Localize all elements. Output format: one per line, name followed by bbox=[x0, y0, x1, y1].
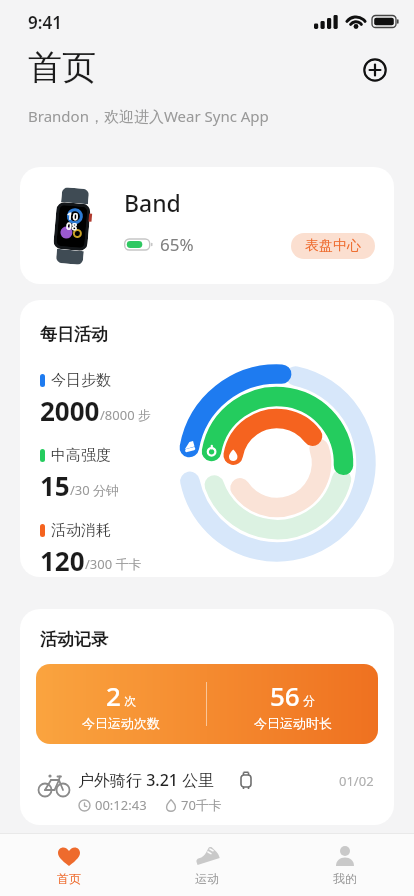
staticText: 今日步数 bbox=[51, 371, 111, 390]
staticText: 活动记录 bbox=[40, 629, 108, 650]
staticText: 户外骑行 3.21 公里 bbox=[78, 769, 215, 791]
staticText: Brandon，欢迎进入Wear Sync App bbox=[28, 106, 269, 126]
button[interactable]: 我的 bbox=[276, 834, 414, 896]
staticText: 首页 bbox=[28, 46, 96, 89]
staticText: 65% bbox=[160, 233, 194, 256]
staticText: 今日运动次数 bbox=[82, 715, 160, 731]
staticText: 运动 bbox=[195, 871, 219, 886]
staticText: /30 分钟 bbox=[70, 481, 120, 499]
staticText: 中高强度 bbox=[51, 446, 111, 465]
staticText: 120 bbox=[40, 543, 85, 577]
button[interactable] bbox=[360, 55, 390, 85]
staticText: 01/02 bbox=[339, 772, 374, 790]
staticText: 我的 bbox=[333, 871, 357, 886]
staticText: /300 千卡 bbox=[85, 555, 142, 573]
staticText: 2000 bbox=[40, 393, 100, 428]
staticText: 10 bbox=[66, 208, 79, 223]
staticText: 08 bbox=[65, 218, 79, 233]
button[interactable]: 2 bbox=[36, 664, 378, 744]
staticText: 56 bbox=[270, 678, 300, 713]
staticText: 15 bbox=[40, 468, 70, 503]
staticText: 9:41 bbox=[28, 11, 62, 34]
staticText: 00:12:43 bbox=[95, 796, 147, 814]
button[interactable]: 运动 bbox=[138, 834, 276, 896]
button[interactable]: 每日活动 bbox=[20, 300, 394, 577]
button[interactable]: 10 bbox=[20, 167, 394, 284]
button[interactable]: 表盘中心 bbox=[291, 233, 375, 259]
staticText: 次 bbox=[121, 692, 137, 708]
button[interactable]: 首页 bbox=[0, 834, 138, 896]
staticText: 70千卡 bbox=[181, 796, 222, 814]
staticText: 2 bbox=[106, 678, 121, 713]
staticText: 首页 bbox=[57, 871, 81, 886]
staticText: /8000 步 bbox=[100, 406, 151, 424]
staticText: 表盘中心 bbox=[305, 237, 361, 255]
staticText: 分 bbox=[300, 692, 316, 708]
staticText: 今日运动时长 bbox=[254, 715, 332, 731]
staticText: Band bbox=[124, 187, 181, 218]
button[interactable]: 户外骑行 3.21 公里 bbox=[38, 769, 374, 814]
staticText: 活动消耗 bbox=[51, 521, 111, 540]
staticText: 每日活动 bbox=[40, 324, 108, 345]
